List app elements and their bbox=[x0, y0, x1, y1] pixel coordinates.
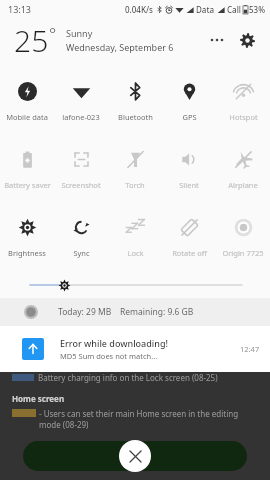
staticText: Today: 29 MB bbox=[58, 306, 112, 318]
staticText: Screenshot bbox=[61, 180, 101, 190]
staticText: 13:13 bbox=[8, 3, 32, 15]
staticText: Battery charging info on the Lock screen… bbox=[38, 372, 218, 383]
staticText: Lock bbox=[127, 248, 144, 258]
staticText: Airplane bbox=[228, 180, 258, 190]
button[interactable]: Brightness slider bbox=[0, 272, 270, 298]
staticText: Home screen bbox=[12, 393, 65, 404]
staticText: Data bbox=[196, 4, 215, 15]
button[interactable]: Torch bbox=[108, 136, 162, 204]
staticText: Call bbox=[227, 4, 241, 15]
staticText: 0.04K/s bbox=[125, 4, 153, 15]
staticText: Origin 7725 bbox=[222, 248, 264, 258]
staticText: lafone-023 bbox=[62, 112, 100, 122]
staticText: Remaining: 9.6 GB bbox=[120, 306, 194, 318]
button[interactable]: Brightness bbox=[0, 204, 54, 272]
staticText: Battery saver bbox=[4, 180, 51, 190]
staticText: Mobile data bbox=[6, 112, 48, 122]
staticText: - Users can set their main Home screen i… bbox=[39, 408, 258, 430]
button[interactable]: Mobile data bbox=[0, 68, 54, 136]
button[interactable]: Origin 7725 bbox=[216, 204, 270, 272]
staticText: Wednesday, September 6 bbox=[66, 41, 174, 53]
staticText: ° bbox=[49, 22, 57, 45]
staticText: Torch bbox=[125, 180, 145, 190]
button[interactable]: More options bbox=[204, 27, 230, 53]
staticText: GPS bbox=[182, 112, 197, 122]
staticText: 25 bbox=[14, 20, 49, 61]
button[interactable]: Close bbox=[119, 440, 151, 472]
button[interactable]: Settings bbox=[234, 27, 260, 53]
button[interactable]: lafone-023 bbox=[54, 68, 108, 136]
button[interactable]: Rotate off bbox=[162, 204, 216, 272]
button[interactable]: Clear all notifications bbox=[23, 441, 247, 471]
staticText: Error while downloading! bbox=[60, 337, 168, 349]
staticText: Rotate off bbox=[172, 248, 207, 258]
staticText: Bluetooth bbox=[118, 112, 153, 122]
button[interactable]: Sync bbox=[54, 204, 108, 272]
staticText: Silent bbox=[179, 180, 199, 190]
staticText: MD5 Sum does not match... bbox=[60, 351, 158, 361]
staticText: Hotspot bbox=[229, 112, 258, 122]
button[interactable]: Today: 29 MB bbox=[0, 298, 270, 326]
staticText: 53% bbox=[249, 4, 265, 15]
button[interactable]: Screenshot bbox=[54, 136, 108, 204]
button[interactable]: GPS bbox=[162, 68, 216, 136]
button[interactable]: Bluetooth bbox=[108, 68, 162, 136]
staticText: Brightness bbox=[8, 248, 46, 258]
button[interactable]: Error while downloading! bbox=[0, 326, 270, 372]
button[interactable]: Battery saver bbox=[0, 136, 54, 204]
button[interactable]: Lock bbox=[108, 204, 162, 272]
staticText: Sync bbox=[73, 248, 90, 258]
staticText: Sunny bbox=[66, 27, 93, 39]
button[interactable]: Hotspot bbox=[216, 68, 270, 136]
button[interactable]: Airplane bbox=[216, 136, 270, 204]
staticText: 12:47 bbox=[240, 344, 260, 354]
button[interactable]: Silent bbox=[162, 136, 216, 204]
